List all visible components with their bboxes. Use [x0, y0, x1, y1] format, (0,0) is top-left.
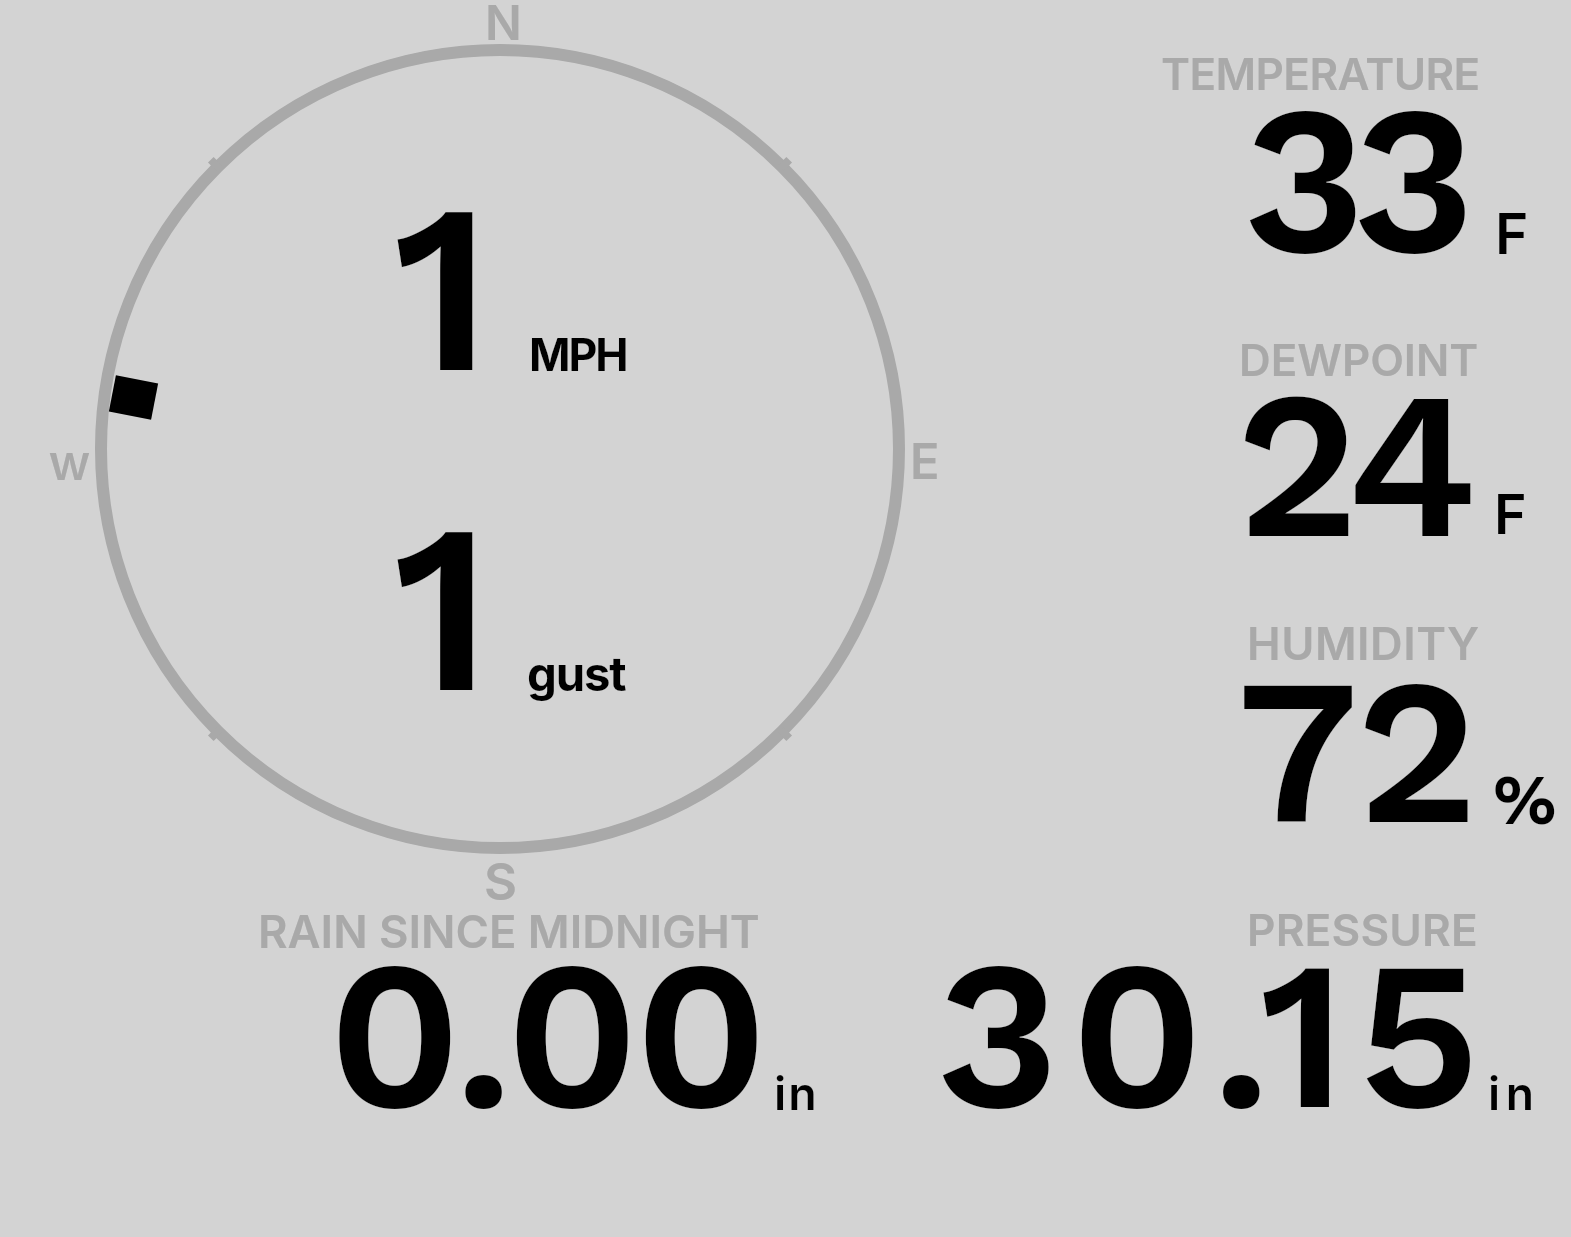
staticText: 1: [393, 148, 493, 428]
button[interactable]: Pressure 30.15 in: [880, 900, 1571, 1237]
staticText: PRESSURE: [1247, 903, 1478, 956]
staticText: S: [484, 851, 518, 912]
staticText: %: [1493, 759, 1557, 841]
staticText: 30.15: [936, 912, 1491, 1158]
button[interactable]: Wind direction: [109, 375, 158, 420]
staticText: gust: [527, 645, 626, 702]
staticText: in: [774, 1065, 819, 1121]
staticText: RAIN SINCE MIDNIGHT: [258, 904, 760, 959]
button[interactable]: Temperature 33 F: [950, 0, 1571, 293]
staticText: 72: [1237, 631, 1476, 872]
staticText: 1: [393, 468, 493, 748]
button[interactable]: Wind speed and direction: [0, 0, 950, 900]
staticText: 24: [1236, 343, 1470, 587]
staticText: in: [1488, 1065, 1540, 1121]
staticText: 0.00: [328, 912, 764, 1158]
staticText: F: [1494, 480, 1527, 547]
staticText: TEMPERATURE: [1161, 47, 1480, 100]
button[interactable]: Rain since midnight 0.00 in: [0, 900, 880, 1237]
staticText: DEWPOINT: [1239, 333, 1479, 386]
staticText: F: [1495, 199, 1529, 268]
staticText: N: [485, 0, 522, 52]
staticText: HUMIDITY: [1247, 616, 1480, 671]
staticText: 33: [1243, 58, 1463, 303]
button[interactable]: Dewpoint 24 F: [950, 293, 1571, 586]
staticText: W: [49, 441, 90, 490]
staticText: E: [910, 432, 940, 491]
button[interactable]: Humidity 72 percent: [950, 586, 1571, 880]
staticText: MPH: [529, 328, 627, 382]
